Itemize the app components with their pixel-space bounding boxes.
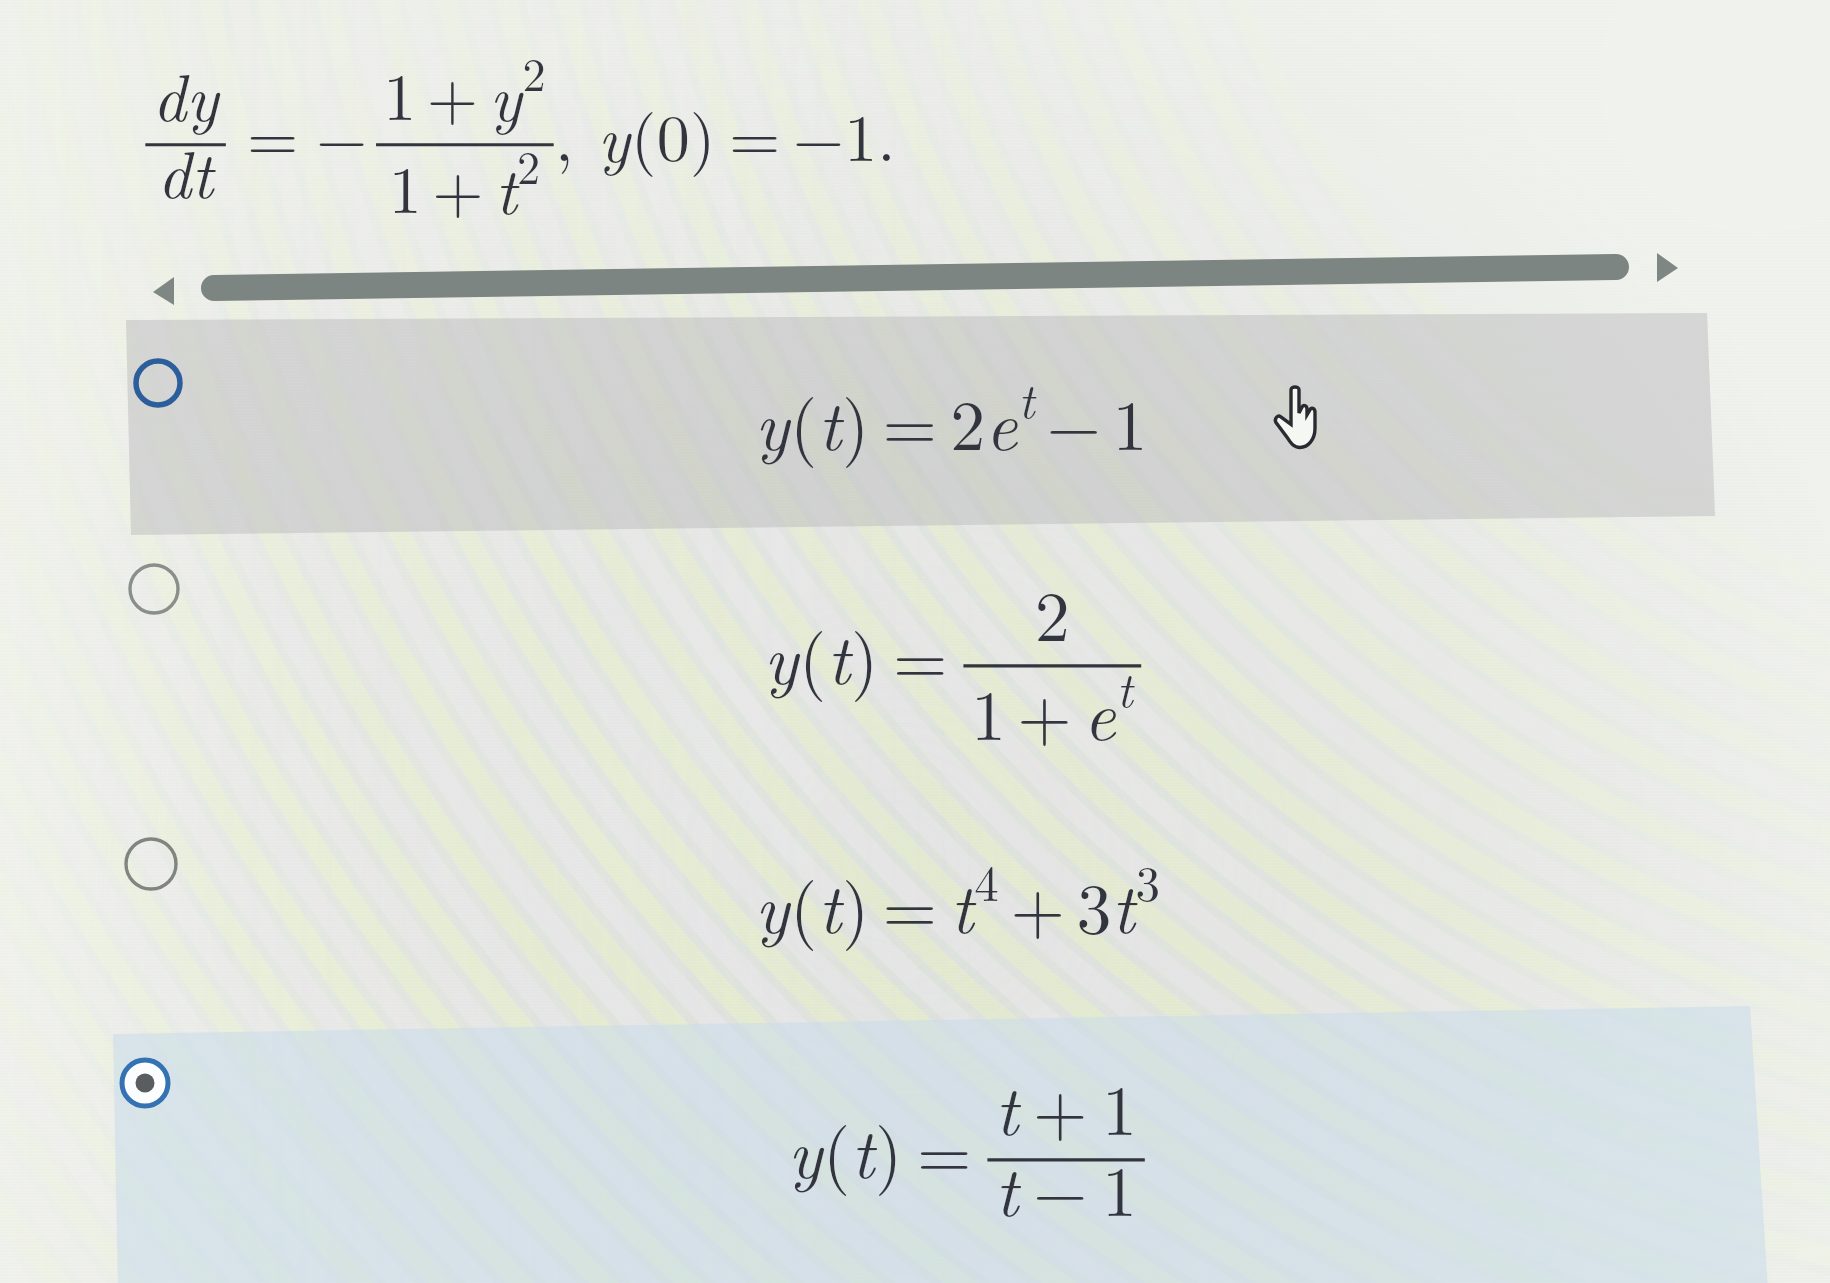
button[interactable]: Horizontal scroll bar [200,250,1632,300]
button[interactable]: Answer option y of t equals t to the fou… [116,810,1726,1025]
button[interactable]: Answer option y of t equals 2 over 1 plu… [118,545,1718,800]
button[interactable]: Answer option y of t equals 2 e to the t… [126,312,1714,536]
button[interactable]: Scroll left [144,266,184,312]
button[interactable]: Selected answer option y of t equals t p… [113,1006,1768,1283]
button[interactable]: Scroll right [1648,242,1688,290]
